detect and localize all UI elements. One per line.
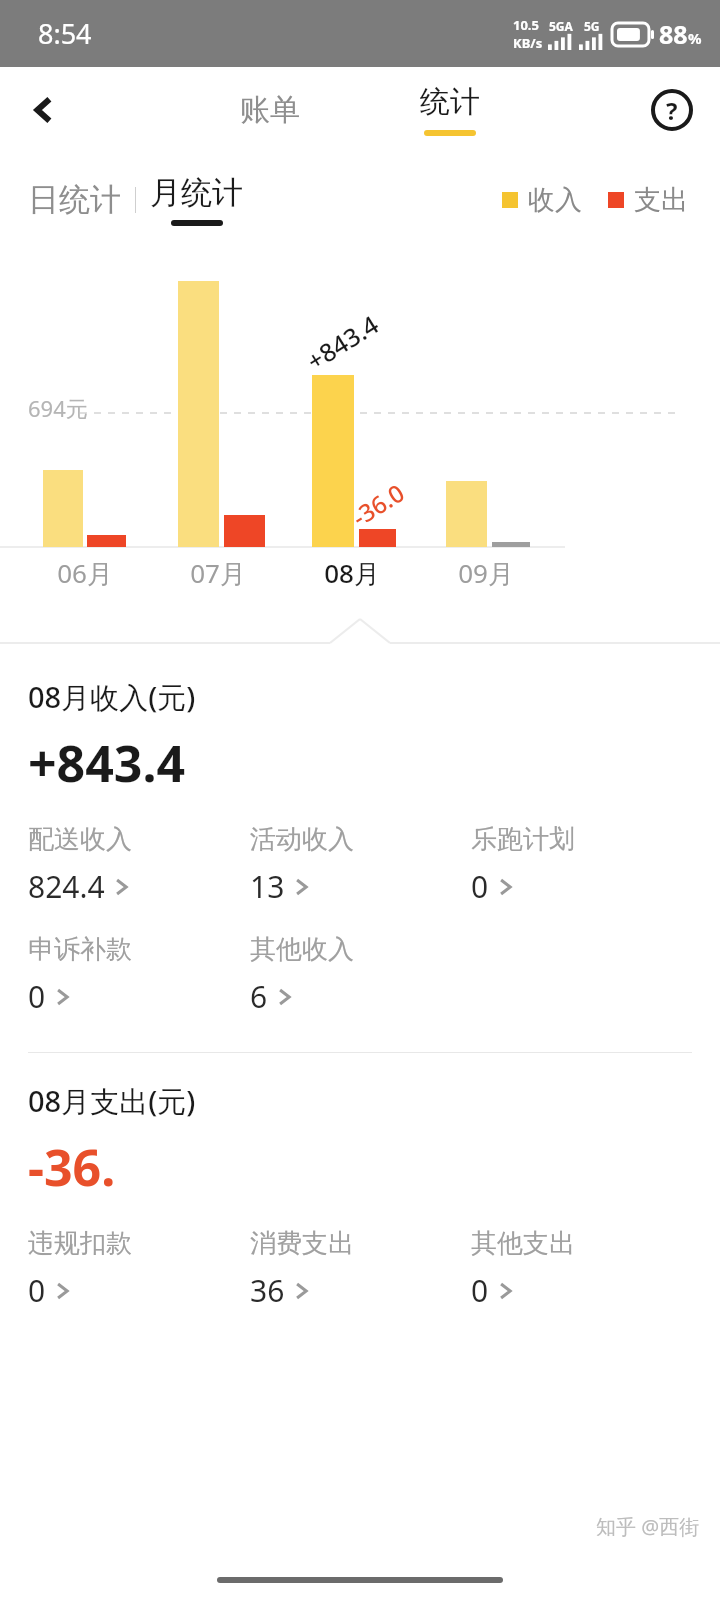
button[interactable]: 统计 [360,67,540,152]
button[interactable]: 08月 [307,555,397,591]
button[interactable]: 消费支出 [250,1227,354,1311]
button[interactable]: 账单 [180,67,360,152]
staticText: 其他收入 [250,933,354,966]
staticText: 申诉补款 [28,933,132,966]
button[interactable]: 06月 [40,555,130,591]
staticText: 6 [250,976,268,1017]
button[interactable]: Back [16,82,72,138]
staticText: 13 [250,866,285,907]
button[interactable]: 违规扣款 [28,1227,132,1311]
staticText: -36.0 [345,476,410,533]
staticText: 0 [471,866,489,907]
button[interactable]: 其他收入 [250,933,354,1017]
staticText: 824.4 [28,866,105,907]
staticText: ? [666,94,678,127]
staticText: +843.4 [28,729,186,797]
staticText: 收入 [528,183,582,217]
button[interactable]: 07月 [173,555,263,591]
staticText: 08月支出(元) [28,1081,196,1121]
staticText: 8:54 [38,15,92,52]
button[interactable]: 乐跑计划 [471,823,575,907]
staticText: 统计 [420,83,480,121]
button[interactable]: 申诉补款 [28,933,132,1017]
staticText: % [688,28,702,48]
staticText: 694元 [28,393,88,423]
button[interactable]: 09月 [441,555,531,591]
staticText: 其他支出 [471,1227,575,1260]
staticText: 10.5 [513,16,539,34]
staticText: KB/s [513,34,543,52]
staticText: 消费支出 [250,1227,354,1260]
staticText: 0 [471,1270,489,1311]
staticText: 账单 [240,91,300,129]
button[interactable]: 日统计 [28,172,121,227]
staticText: 36 [250,1270,285,1311]
staticText: 乐跑计划 [471,823,575,856]
button[interactable]: 其他支出 [471,1227,575,1311]
staticText: 配送收入 [28,823,132,856]
staticText: 0 [28,1270,46,1311]
staticText: 5GA [549,18,573,34]
staticText: 09月 [458,555,514,591]
staticText: -36. [28,1133,116,1201]
staticText: 支出 [634,183,688,217]
staticText: 06月 [57,555,113,591]
button[interactable]: Help [644,82,700,138]
staticText: 0 [28,976,46,1017]
button[interactable]: 配送收入 [28,823,132,907]
staticText: 08月收入(元) [28,677,196,717]
button[interactable]: 月统计 [150,173,243,226]
staticText: +843.4 [300,307,385,377]
staticText: 08月 [324,555,380,591]
staticText: 88 [659,17,688,51]
staticText: 5G [584,18,600,34]
staticText: 月统计 [150,173,243,212]
staticText: 知乎 @西街 [596,1513,700,1540]
staticText: 违规扣款 [28,1227,132,1260]
staticText: 07月 [190,555,246,591]
staticText: 日统计 [28,180,121,219]
staticText: 活动收入 [250,823,354,856]
button[interactable]: 活动收入 [250,823,354,907]
